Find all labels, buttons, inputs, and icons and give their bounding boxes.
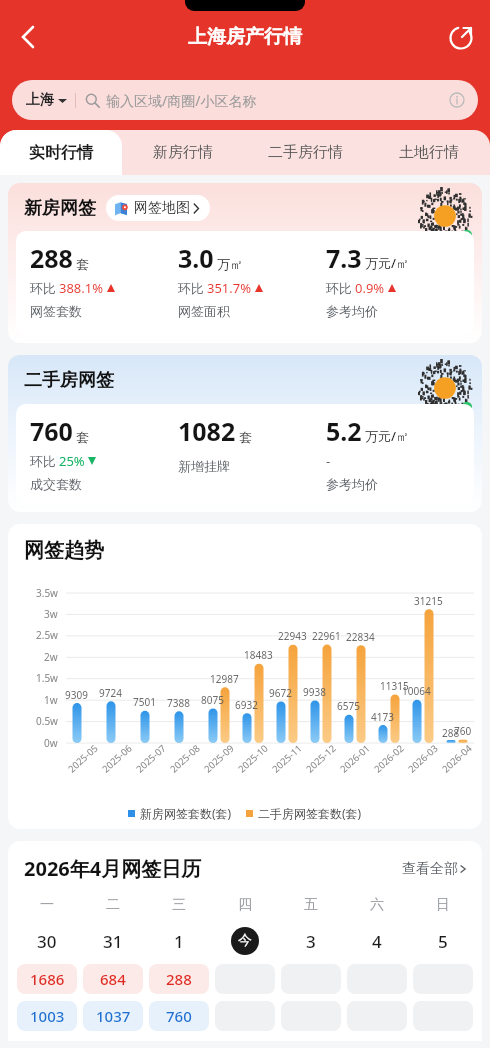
staticText: 环比: [326, 280, 352, 296]
staticText: 9309: [65, 688, 88, 702]
button[interactable]: 3: [278, 926, 344, 956]
staticText: 288: [30, 241, 73, 275]
staticText: 查看全部: [402, 860, 458, 878]
staticText: 10064: [402, 684, 431, 698]
staticText: 土地行情: [399, 143, 459, 162]
button[interactable]: 二手房行情: [244, 130, 367, 175]
staticText: 2025-08: [167, 742, 203, 775]
staticText: 新增挂牌: [178, 458, 230, 474]
button[interactable]: 1686: [17, 964, 77, 994]
staticText: 22834: [346, 630, 375, 644]
staticText: 二手房网签: [24, 369, 114, 392]
staticText: 0.5w: [36, 714, 58, 728]
button[interactable]: 31: [80, 926, 146, 956]
button[interactable]: 1037: [83, 1001, 143, 1031]
staticText: 1.5w: [36, 671, 58, 685]
button[interactable]: 今: [212, 926, 278, 956]
staticText: 9724: [99, 686, 122, 700]
staticText: -: [326, 452, 331, 470]
staticText: 0w: [44, 736, 58, 750]
staticText: 二手房网签套数(套): [258, 805, 362, 821]
button[interactable]: 上海: [12, 80, 478, 120]
staticText: 30: [37, 930, 57, 953]
staticText: 1037: [96, 1006, 131, 1026]
staticText: 一: [40, 896, 54, 914]
button[interactable]: 5: [410, 926, 476, 956]
staticText: 3w: [44, 607, 58, 621]
staticText: 2025-11: [269, 742, 305, 775]
staticText: 万元/㎡: [365, 427, 410, 445]
staticText: 万元/㎡: [365, 254, 410, 272]
staticText: 4173: [371, 710, 394, 724]
button[interactable]: 30: [14, 926, 80, 956]
staticText: 8075: [201, 693, 224, 707]
staticText: 3.0: [178, 241, 214, 275]
staticText: 1: [174, 930, 184, 953]
staticText: 7.3: [326, 241, 362, 275]
staticText: 六: [370, 896, 384, 914]
staticText: 7388: [167, 696, 190, 710]
button[interactable]: 1003: [17, 1001, 77, 1031]
staticText: 参考均价: [326, 303, 378, 319]
staticText: 二: [106, 896, 120, 914]
staticText: 上海: [26, 91, 54, 109]
staticText: 22943: [278, 629, 307, 643]
staticText: 1686: [30, 969, 65, 989]
staticText: 2w: [44, 650, 58, 664]
staticText: 2025-12: [303, 742, 339, 775]
staticText: 2025-09: [201, 742, 237, 775]
staticText: 0.9%: [355, 279, 385, 297]
button[interactable]: 684: [83, 964, 143, 994]
staticText: 2025-05: [65, 742, 101, 775]
button[interactable]: 网签地图: [106, 195, 210, 221]
staticText: 网签趋势: [24, 538, 104, 563]
staticText: 31215: [414, 594, 443, 608]
staticText: 环比: [30, 280, 56, 296]
button[interactable]: 新房行情: [122, 130, 244, 175]
staticText: 7501: [133, 695, 156, 709]
staticText: 今: [238, 932, 252, 950]
staticText: 套: [76, 256, 89, 272]
button[interactable]: 760: [149, 1001, 209, 1031]
button[interactable]: Share: [440, 16, 482, 58]
staticText: 五: [304, 896, 318, 914]
staticText: 实时行情: [29, 143, 93, 163]
staticText: 2025-10: [235, 742, 271, 775]
staticText: 388.1%: [59, 279, 104, 297]
button[interactable]: Back: [6, 15, 50, 59]
staticText: 三: [172, 896, 186, 914]
button[interactable]: 实时行情: [0, 130, 122, 175]
button[interactable]: 土地行情: [367, 130, 490, 175]
button[interactable]: 1: [146, 926, 212, 956]
staticText: 3: [306, 930, 316, 953]
staticText: 760: [166, 1006, 192, 1026]
button[interactable]: 4: [344, 926, 410, 956]
staticText: 351.7%: [207, 279, 252, 297]
staticText: 2025-06: [99, 742, 135, 775]
staticText: 1w: [44, 693, 58, 707]
staticText: 2.5w: [36, 628, 58, 642]
staticText: 参考均价: [326, 476, 378, 492]
staticText: 5: [438, 930, 448, 953]
staticText: 环比: [178, 280, 204, 296]
staticText: 760: [454, 724, 472, 738]
staticText: 四: [238, 896, 252, 914]
button[interactable]: 288: [149, 964, 209, 994]
staticText: 2025-07: [133, 742, 169, 775]
staticText: 2026-03: [405, 742, 441, 775]
staticText: 成交套数: [30, 476, 82, 492]
button[interactable]: 查看全部: [402, 860, 468, 878]
staticText: 9672: [269, 686, 292, 700]
staticText: 1003: [30, 1006, 65, 1026]
staticText: 2026-02: [371, 742, 407, 775]
staticText: 套: [239, 429, 252, 445]
staticText: 684: [100, 969, 126, 989]
